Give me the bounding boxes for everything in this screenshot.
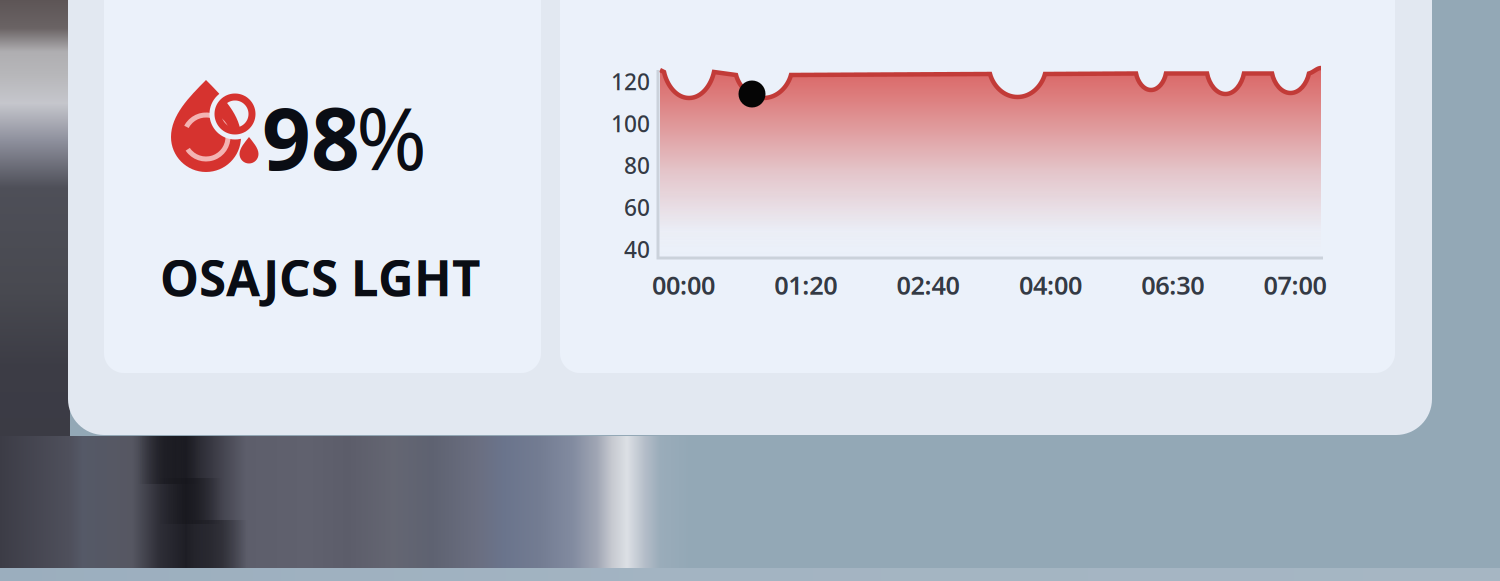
staticText: 01:20 (774, 268, 837, 302)
staticText: 100 (611, 108, 650, 138)
staticText: 60 (624, 192, 650, 222)
staticText: 04:00 (1019, 268, 1082, 302)
staticText: 120 (611, 66, 650, 96)
staticText: 02:40 (897, 268, 960, 302)
staticText: 98 (262, 80, 360, 194)
staticText: 40 (624, 234, 650, 264)
button[interactable]: 98 (165, 75, 505, 310)
staticText: % (356, 80, 427, 194)
staticText: 07:00 (1263, 268, 1326, 302)
staticText: 80 (624, 150, 650, 180)
staticText: 06:30 (1141, 268, 1204, 302)
staticText: 00:00 (652, 268, 715, 302)
staticText: OSAJCS LGHT (160, 244, 480, 310)
